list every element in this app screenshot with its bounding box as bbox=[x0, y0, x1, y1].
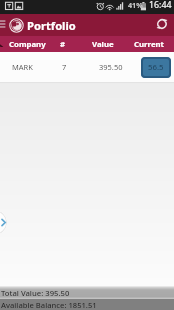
staticText: Available Balance: 1851.51 bbox=[1, 300, 97, 310]
button[interactable]: MARK bbox=[0, 52, 174, 82]
button[interactable]: Refresh bbox=[150, 14, 174, 36]
button[interactable]: Open drawer bbox=[0, 210, 7, 235]
staticText: Portfolio bbox=[27, 18, 76, 33]
staticText: 56.5 bbox=[148, 62, 164, 73]
staticText: 395.50 bbox=[99, 62, 123, 72]
staticText: 41% bbox=[128, 0, 143, 10]
staticText: 16:44 bbox=[149, 0, 172, 11]
staticText: Value bbox=[92, 39, 114, 50]
staticText: Current bbox=[134, 39, 164, 50]
button[interactable]: Open navigation drawer bbox=[0, 14, 9, 36]
staticText: MARK bbox=[12, 62, 33, 72]
staticText: # bbox=[60, 39, 66, 50]
button[interactable]: 56.5 bbox=[141, 57, 171, 78]
staticText: Company bbox=[9, 39, 46, 50]
staticText: Total Value: 395.50 bbox=[1, 288, 70, 298]
staticText: 7 bbox=[62, 62, 67, 72]
